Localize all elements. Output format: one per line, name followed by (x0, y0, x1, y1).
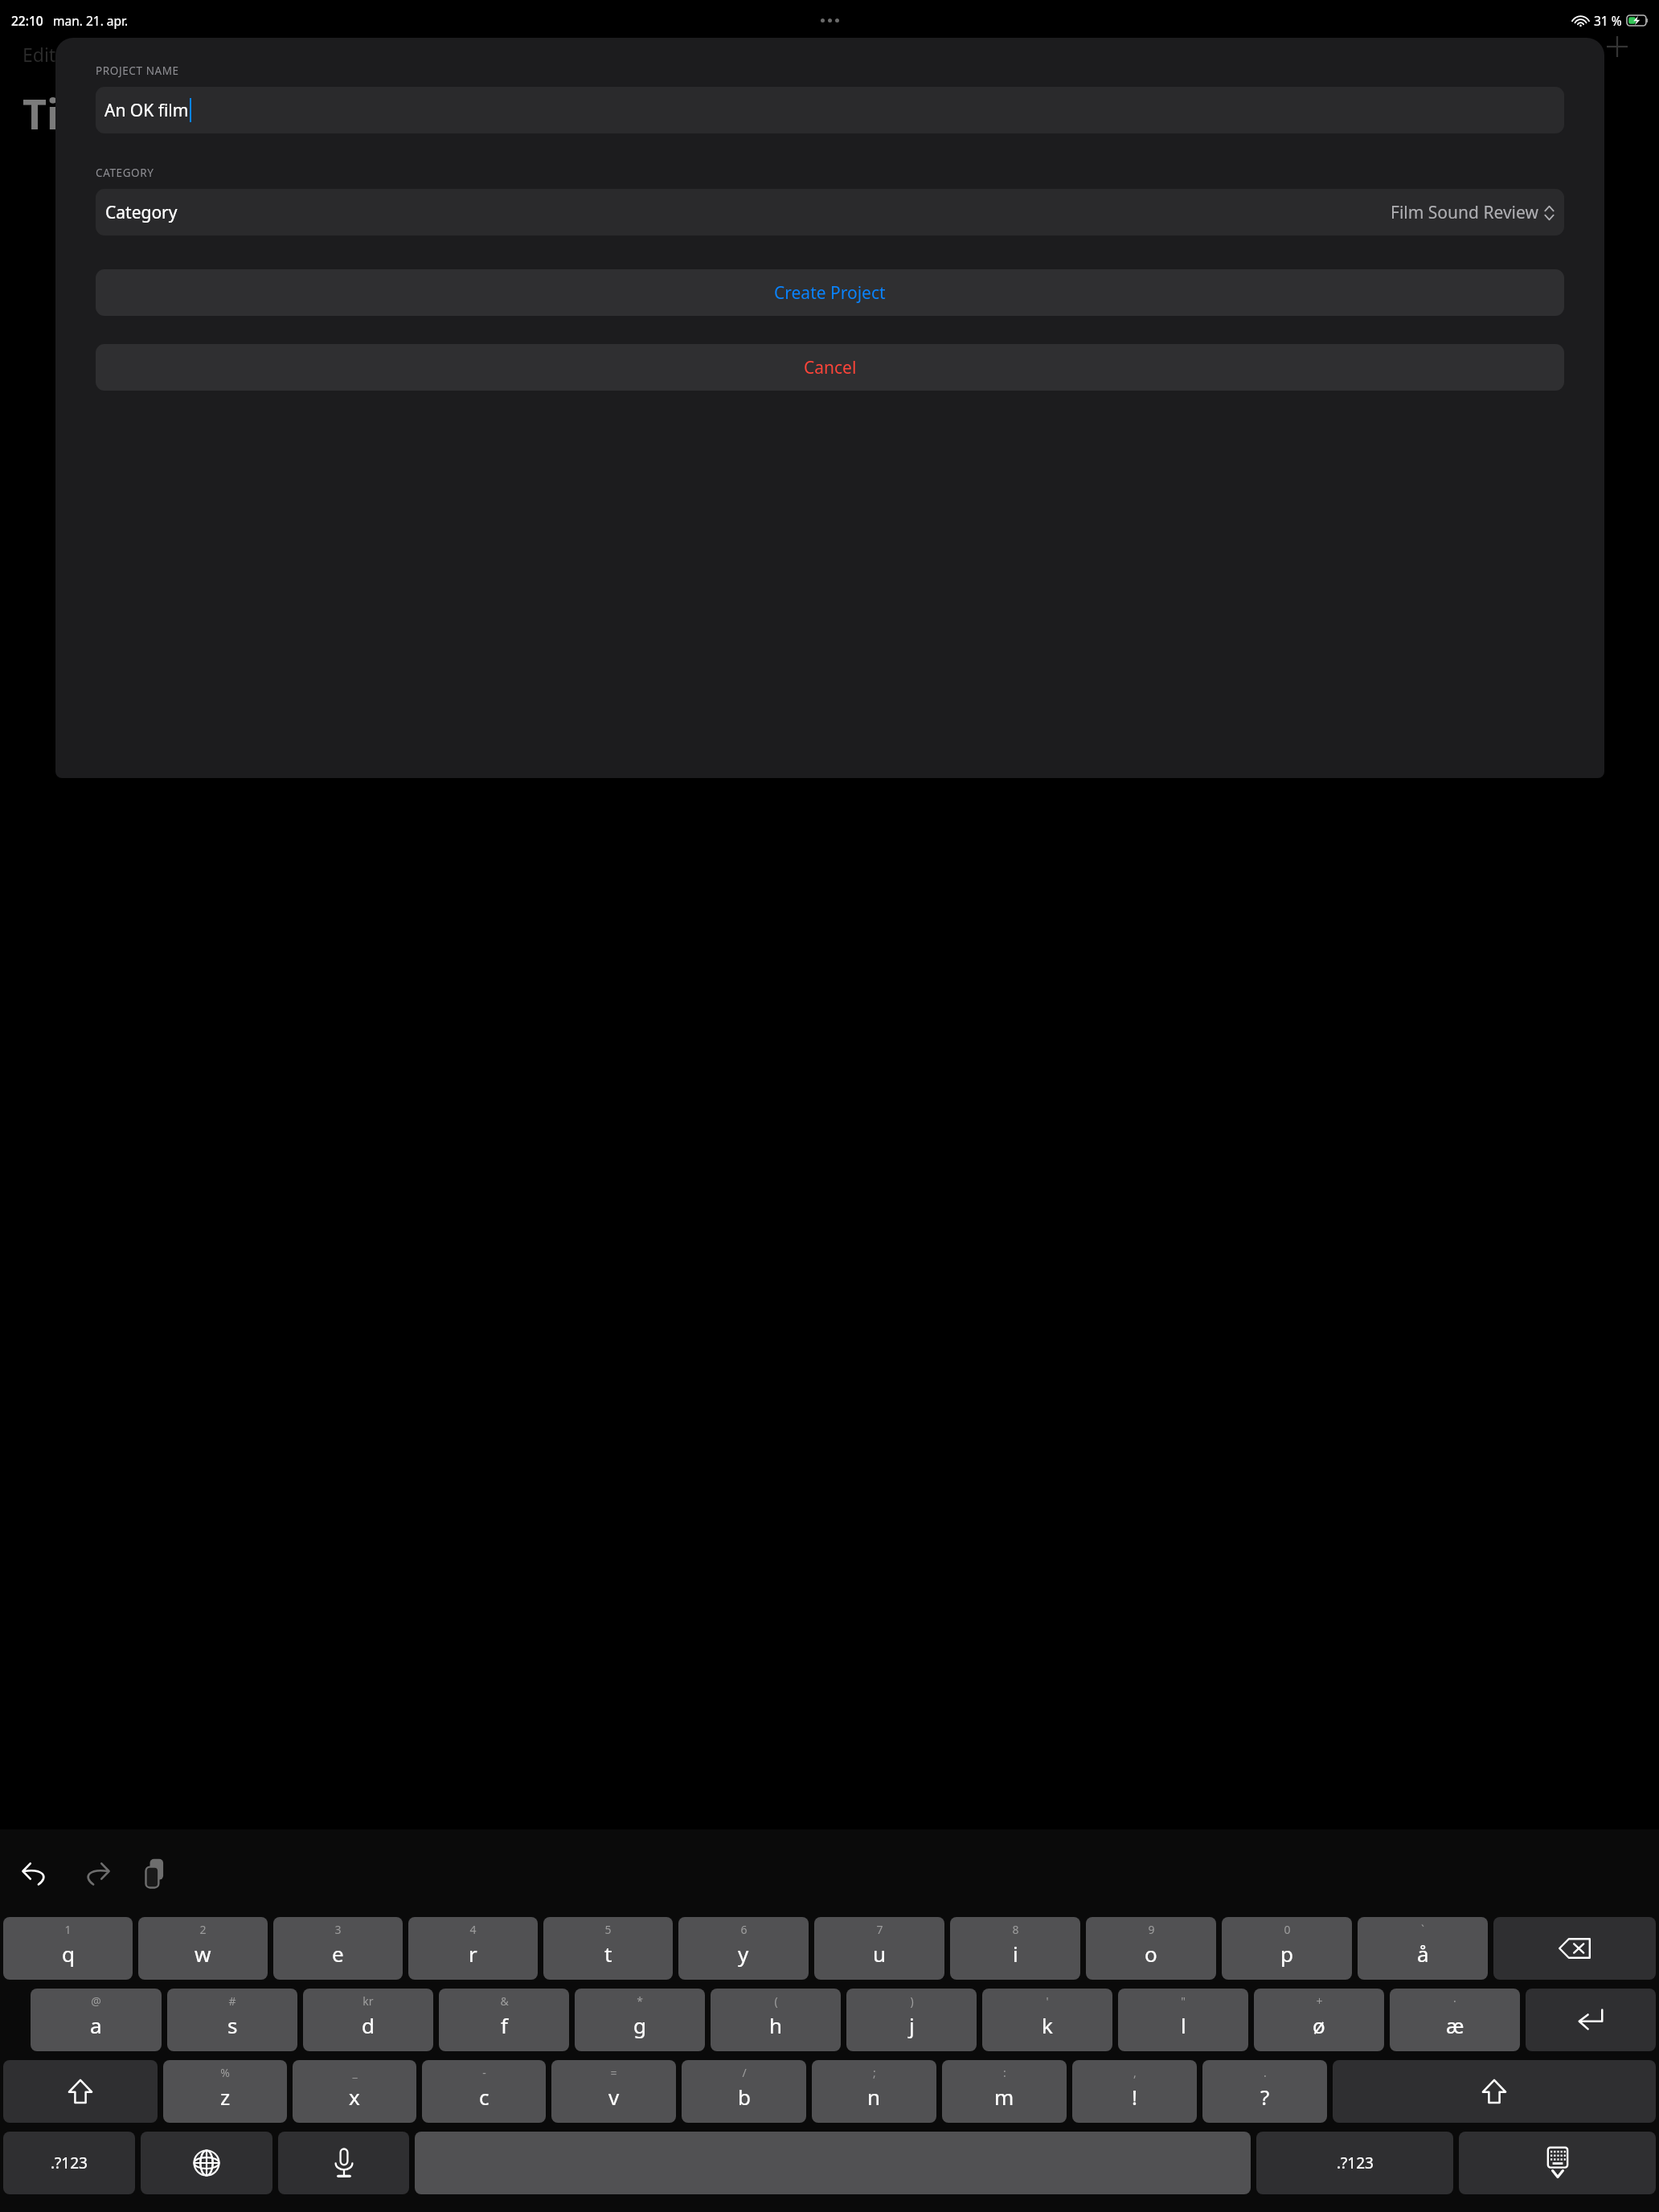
button[interactable]: + (1254, 1989, 1384, 2051)
button[interactable]: 7 (814, 1917, 944, 1980)
button[interactable]: Dictate (278, 2132, 409, 2194)
staticText: o (1145, 1940, 1157, 1968)
staticText: k (1042, 2011, 1053, 2039)
staticText: a (90, 2011, 102, 2039)
button[interactable]: 5 (543, 1917, 673, 1980)
staticText: f (501, 2011, 508, 2039)
button[interactable]: = (551, 2060, 676, 2123)
button[interactable]: - (422, 2060, 546, 2123)
button[interactable]: Paste (129, 1847, 182, 1900)
button[interactable]: 4 (408, 1917, 538, 1980)
staticText: w (195, 1940, 211, 1968)
button[interactable]: ' (982, 1989, 1112, 2051)
button[interactable]: Add (1600, 29, 1635, 64)
button[interactable]: / (682, 2060, 806, 2123)
button[interactable]: 2 (138, 1917, 268, 1980)
button[interactable]: Undo (10, 1847, 63, 1900)
button[interactable]: Redo (69, 1847, 122, 1900)
button[interactable]: ) (846, 1989, 977, 2051)
button[interactable]: .?123 (1256, 2132, 1453, 2194)
button[interactable]: Create Project (96, 269, 1564, 316)
button[interactable]: " (1118, 1989, 1248, 2051)
button[interactable]: 9 (1086, 1917, 1216, 1980)
button[interactable]: # (167, 1989, 297, 2051)
staticText: m (994, 2083, 1014, 2111)
staticText: ? (1260, 2083, 1270, 2111)
button[interactable]: · (1390, 1989, 1520, 2051)
staticText: Ti (23, 84, 59, 141)
staticText: ( (774, 1993, 778, 2009)
staticText: t (604, 1940, 612, 1968)
button[interactable]: @ (31, 1989, 162, 2051)
staticText: % (220, 2065, 230, 2080)
staticText: Create Project (774, 281, 886, 305)
staticText: s (227, 2011, 238, 2039)
staticText: v (608, 2083, 620, 2111)
staticText: - (482, 2065, 486, 2080)
staticText: z (220, 2083, 231, 2111)
button[interactable]: 3 (273, 1917, 403, 1980)
button[interactable]: Backspace (1493, 1917, 1656, 1980)
staticText: & (500, 1993, 509, 2009)
staticText: q (62, 1940, 75, 1968)
staticText: man. 21. apr. (53, 12, 129, 29)
staticText: 3 (334, 1922, 342, 1937)
staticText: i (1013, 1940, 1018, 1968)
button[interactable]: * (575, 1989, 705, 2051)
staticText: Cancel (804, 356, 857, 379)
button[interactable]: ` (1358, 1917, 1488, 1980)
button[interactable]: % (163, 2060, 287, 2123)
staticText: .?123 (51, 2153, 88, 2173)
staticText: ` (1421, 1922, 1424, 1937)
button[interactable]: _ (293, 2060, 416, 2123)
button[interactable]: Cancel (96, 344, 1564, 391)
button[interactable]: Return (1526, 1989, 1656, 2051)
staticText: c (479, 2083, 490, 2111)
button[interactable]: . (1202, 2060, 1327, 2123)
staticText: r (469, 1940, 477, 1968)
staticText: Category (105, 201, 178, 224)
staticText: u (873, 1940, 887, 1968)
staticText: * (637, 1993, 643, 2009)
staticText: g (633, 2011, 646, 2039)
staticText: ' (1046, 1993, 1049, 2009)
button[interactable]: ; (812, 2060, 936, 2123)
button[interactable]: & (439, 1989, 569, 2051)
button[interactable]: ( (711, 1989, 841, 2051)
staticText: @ (91, 1993, 101, 2009)
button[interactable]: 6 (678, 1917, 809, 1980)
staticText: 7 (876, 1922, 883, 1937)
button[interactable]: : (942, 2060, 1067, 2123)
staticText: ; (873, 2065, 876, 2080)
staticText: 9 (1148, 1922, 1155, 1937)
button[interactable]: kr (303, 1989, 433, 2051)
button[interactable]: 1 (3, 1917, 133, 1980)
button[interactable]: , (1072, 2060, 1197, 2123)
staticText: .?123 (1337, 2153, 1374, 2173)
button[interactable]: 0 (1222, 1917, 1352, 1980)
staticText: . (1264, 2065, 1267, 2080)
staticText: 6 (740, 1922, 748, 1937)
button[interactable]: Change keyboard (141, 2132, 272, 2194)
button[interactable]: An OK film (96, 87, 1564, 133)
button[interactable]: Shift (3, 2060, 158, 2123)
staticText: 8 (1012, 1922, 1019, 1937)
button[interactable]: Hide keyboard (1459, 2132, 1656, 2194)
button[interactable]: Category (96, 189, 1564, 236)
staticText: 22:10 (11, 12, 43, 29)
staticText: 31 % (1594, 12, 1622, 29)
staticText: / (742, 2065, 747, 2080)
button[interactable]: Shift (1333, 2060, 1656, 2123)
staticText: + (1316, 1993, 1323, 2009)
staticText: PROJECT NAME (96, 63, 179, 78)
staticText: n (867, 2083, 881, 2111)
button[interactable]: 8 (950, 1917, 1080, 1980)
staticText: x (349, 2083, 360, 2111)
button[interactable]: .?123 (3, 2132, 135, 2194)
staticText: , (1133, 2065, 1137, 2080)
staticText: kr (363, 1993, 374, 2009)
staticText: ! (1132, 2083, 1137, 2111)
staticText: p (1280, 1940, 1293, 1968)
staticText: # (228, 1993, 236, 2009)
